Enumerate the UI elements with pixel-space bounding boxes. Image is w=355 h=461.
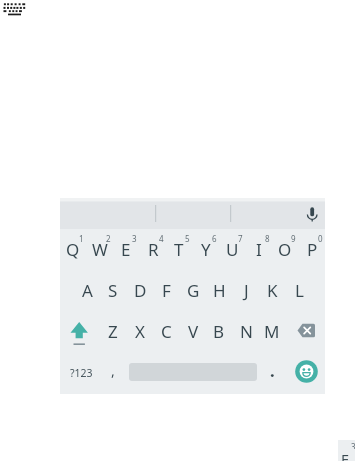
staticText: H — [213, 279, 226, 302]
button[interactable]: Y — [193, 229, 219, 269]
staticText: V — [188, 320, 199, 343]
button[interactable]: E — [113, 229, 139, 269]
button[interactable]: M — [259, 311, 285, 351]
staticText: 8 — [265, 233, 270, 243]
button[interactable]: Z — [100, 311, 126, 351]
button[interactable]: N — [233, 311, 259, 351]
button[interactable] — [285, 352, 325, 393]
staticText: Q — [66, 238, 80, 261]
staticText: P — [307, 238, 318, 261]
button[interactable]: H — [206, 270, 232, 310]
staticText: I — [256, 238, 262, 261]
button[interactable]: ?123 — [61, 353, 101, 393]
button[interactable]: B — [206, 311, 232, 351]
button[interactable]: R — [140, 229, 166, 269]
button[interactable] — [285, 310, 325, 351]
staticText: 9 — [291, 233, 296, 243]
staticText: X — [135, 320, 145, 343]
button[interactable] — [260, 352, 286, 393]
button[interactable]: X — [127, 311, 153, 351]
staticText: 5 — [185, 233, 190, 243]
button[interactable]: C — [153, 311, 179, 351]
button[interactable]: O — [272, 229, 298, 269]
staticText: M — [264, 320, 280, 343]
button[interactable]: K — [259, 270, 285, 310]
button[interactable]: D — [127, 270, 153, 310]
button[interactable]: P — [299, 229, 325, 269]
staticText: E — [121, 238, 131, 261]
button[interactable] — [60, 198, 325, 229]
button[interactable]: V — [180, 311, 206, 351]
staticText: 0 — [318, 233, 323, 243]
staticText: R — [148, 238, 159, 261]
staticText: A — [82, 279, 93, 302]
staticText: F — [162, 279, 171, 302]
staticText: B — [213, 320, 225, 343]
staticText: 3 — [132, 233, 137, 243]
staticText: Y — [201, 238, 211, 261]
button[interactable]: U — [219, 229, 245, 269]
button[interactable] — [60, 310, 100, 351]
button[interactable]: A — [74, 270, 100, 310]
staticText: 4 — [159, 233, 164, 243]
staticText: 6 — [212, 233, 217, 243]
staticText: 1 — [79, 233, 84, 243]
staticText: L — [295, 279, 304, 302]
staticText: O — [278, 238, 292, 261]
staticText: D — [134, 279, 147, 302]
staticText: 2 — [106, 233, 111, 243]
staticText: U — [226, 238, 239, 261]
staticText: W — [92, 238, 108, 261]
staticText: S — [108, 279, 118, 302]
staticText: Z — [108, 320, 118, 343]
staticText: E — [341, 449, 350, 461]
button[interactable]: J — [233, 270, 259, 310]
staticText: C — [161, 320, 172, 343]
staticText: 3 — [351, 441, 355, 449]
button[interactable]: E — [338, 440, 355, 461]
button[interactable]: F — [153, 270, 179, 310]
button[interactable]: G — [180, 270, 206, 310]
staticText: ?123 — [70, 366, 93, 380]
button[interactable]: T — [166, 229, 192, 269]
staticText: J — [244, 279, 249, 302]
staticText: 7 — [238, 233, 243, 243]
button[interactable]: S — [100, 270, 126, 310]
button[interactable]: , — [100, 350, 126, 390]
staticText: , — [111, 361, 115, 380]
staticText: K — [267, 279, 278, 302]
button[interactable]: I — [246, 229, 272, 269]
staticText: T — [174, 238, 184, 261]
button[interactable]: L — [286, 270, 312, 310]
button[interactable]: W — [87, 229, 113, 269]
staticText: G — [187, 279, 200, 302]
button[interactable]: Q — [60, 229, 86, 269]
staticText: N — [240, 320, 253, 343]
